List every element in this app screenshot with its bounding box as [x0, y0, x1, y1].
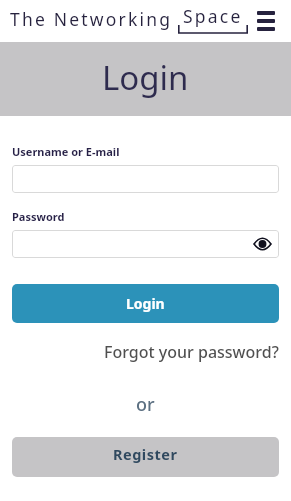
button[interactable]: Register	[12, 437, 279, 477]
button[interactable]	[12, 230, 279, 258]
staticText: The Networking	[10, 7, 173, 31]
staticText: Login	[102, 55, 189, 100]
staticText: Login	[126, 294, 165, 313]
staticText: Register	[113, 444, 178, 464]
button[interactable]: Login	[12, 284, 279, 323]
staticText: Username or E-mail	[12, 144, 120, 159]
staticText: Space	[183, 4, 243, 28]
button[interactable]	[12, 165, 279, 193]
button[interactable]	[255, 9, 277, 33]
staticText: Password	[12, 209, 65, 224]
staticText: or	[136, 392, 155, 417]
button[interactable]: Forgot your password?	[104, 341, 279, 363]
